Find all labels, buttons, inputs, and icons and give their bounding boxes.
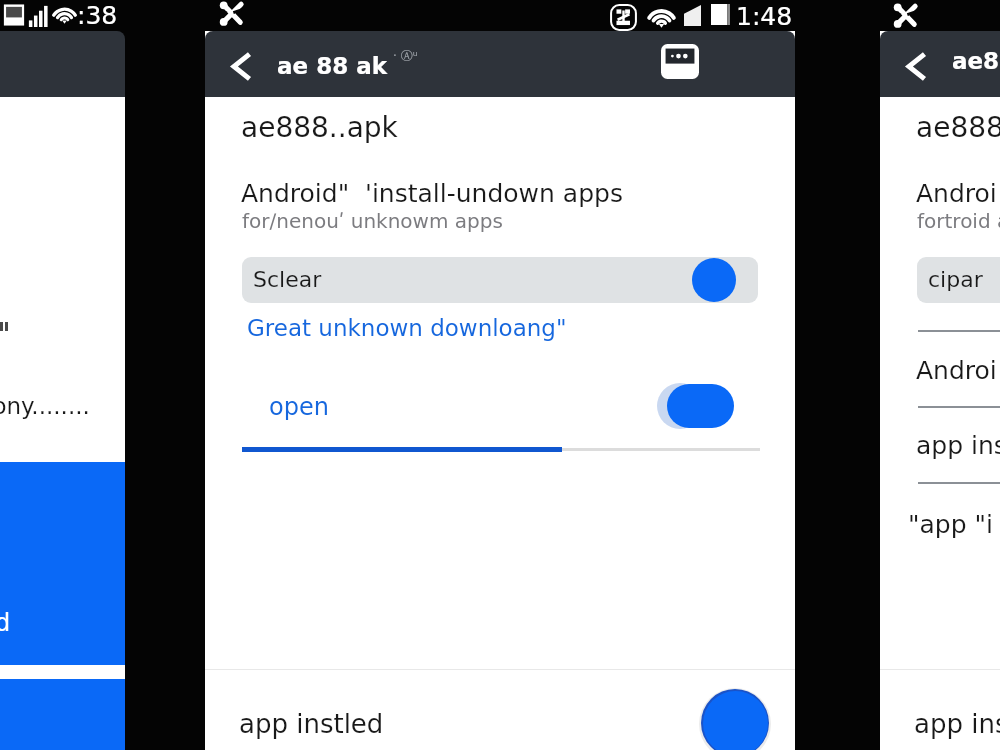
button[interactable]: Great unknown downloang" [247, 310, 571, 344]
button[interactable]: d [0, 462, 125, 665]
button[interactable]: Androi [880, 332, 1000, 406]
staticText: app ins [916, 431, 1000, 460]
staticText: iony........ [0, 393, 90, 420]
staticText: Androi [916, 179, 997, 208]
staticText: :38 [77, 1, 118, 30]
button[interactable]: Back [891, 33, 941, 97]
staticText: ae 88 ak [277, 53, 387, 80]
staticText: app ins [914, 709, 1000, 739]
button[interactable]: Back [216, 33, 266, 97]
staticText: ae888 [916, 111, 1000, 144]
button[interactable]: cipar [917, 257, 1000, 303]
button[interactable]: app ins [880, 408, 1000, 482]
staticText: 1:48 [736, 2, 793, 31]
staticText: app instled [239, 709, 384, 739]
staticText: ae8 [952, 48, 1000, 75]
button[interactable]: "app "i [880, 484, 1000, 558]
staticText: "app "i [908, 510, 993, 539]
button[interactable]: open [242, 381, 652, 431]
button[interactable]: Sclear [242, 257, 758, 303]
staticText: Sclear [253, 267, 322, 293]
staticText: Androi [916, 356, 997, 385]
staticText: for∕nenouʹ unknowm apps [242, 209, 503, 232]
staticText: open [269, 393, 329, 421]
button[interactable]: Open toggle [657, 381, 757, 431]
staticText: ae888..apk [241, 111, 398, 144]
button[interactable]: More options [641, 31, 719, 94]
staticText: Android" 'install-undown apps [241, 179, 623, 208]
staticText: · Ⓐᵘ [393, 48, 418, 63]
staticText: d [0, 609, 11, 637]
staticText: fortroid a [917, 209, 1000, 232]
staticText: Great unknown downloang" [247, 315, 567, 342]
button[interactable]: Install [701, 689, 769, 750]
staticText: cipar [928, 267, 983, 293]
